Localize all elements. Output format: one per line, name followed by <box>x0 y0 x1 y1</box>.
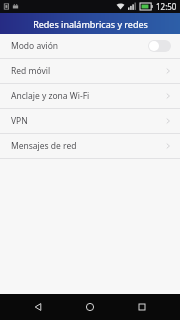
staticText: Red móvil <box>11 65 164 77</box>
button[interactable]: Inicio <box>73 294 107 320</box>
other: Modo avión, desactivado <box>148 40 171 52</box>
staticText: 12:50 <box>156 1 177 12</box>
staticText: Modo avión <box>11 40 148 52</box>
button[interactable]: Atrás <box>21 294 55 320</box>
staticText: Mensajes de red <box>11 140 164 152</box>
staticText: Redes inalámbricas y redes <box>33 18 148 30</box>
button[interactable]: Mensajes de red <box>0 134 180 158</box>
staticText: Anclaje y zona Wi-Fi <box>11 90 164 102</box>
button[interactable]: Recientes <box>125 294 159 320</box>
button[interactable]: Anclaje y zona Wi-Fi <box>0 84 180 108</box>
button[interactable]: VPN <box>0 109 180 133</box>
button[interactable]: Red móvil <box>0 59 180 83</box>
staticText: VPN <box>11 115 164 127</box>
button[interactable]: Modo avión <box>0 34 180 58</box>
